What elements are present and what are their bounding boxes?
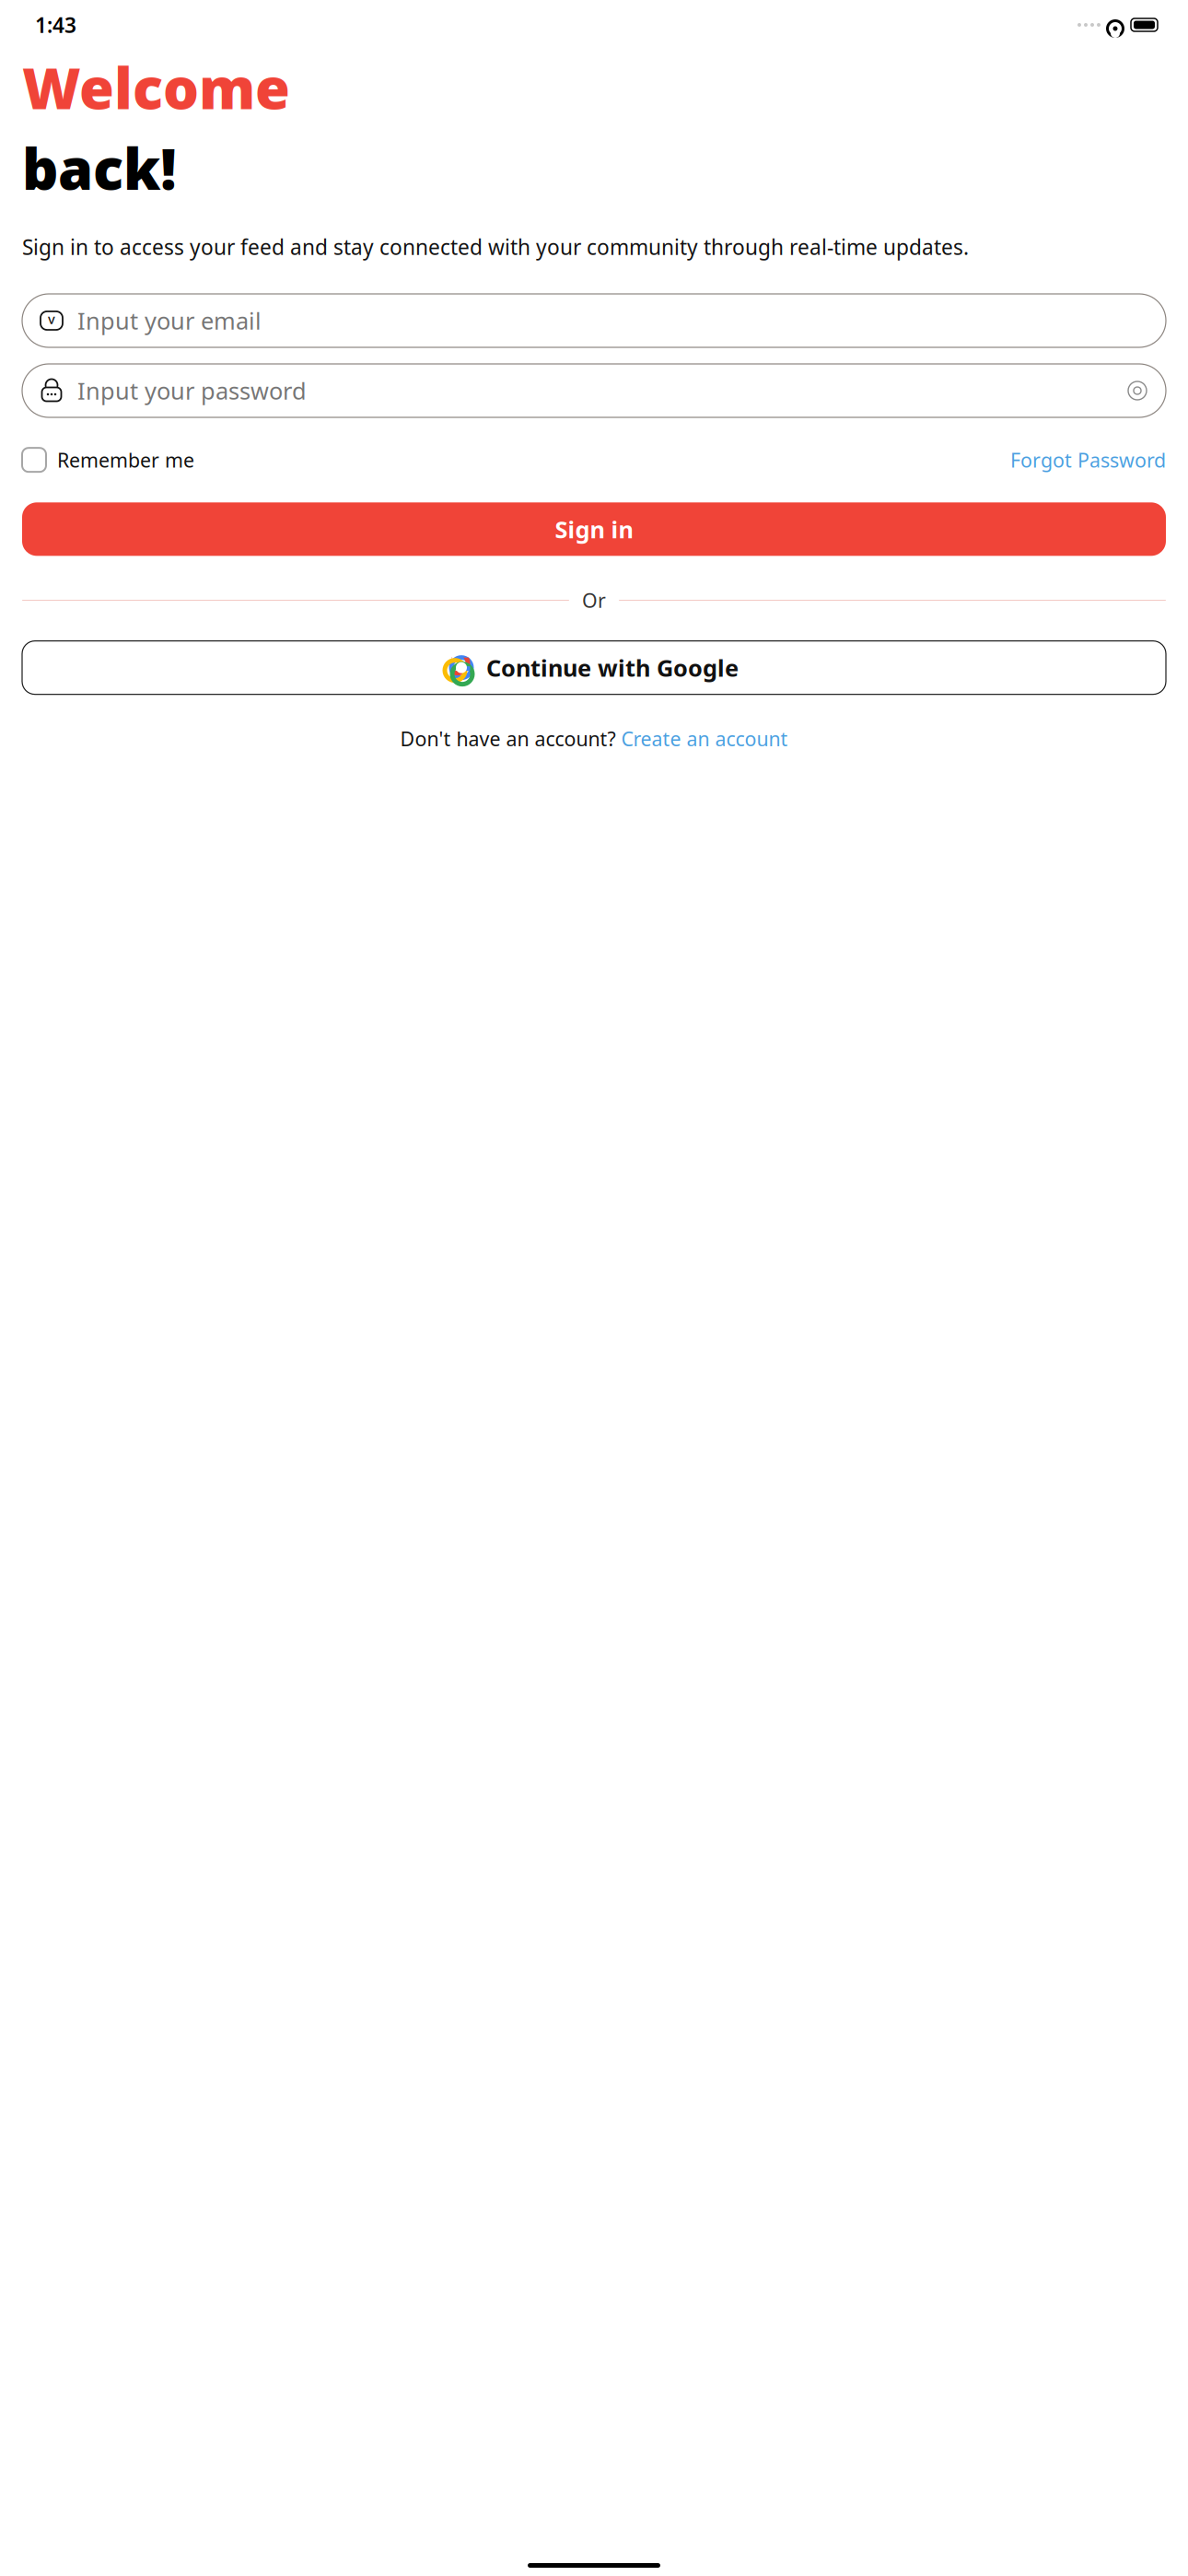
staticText: Continue with Google — [486, 652, 739, 683]
staticText: v — [48, 310, 55, 328]
button[interactable]: Create an account — [621, 726, 788, 752]
staticText: Sign in — [555, 514, 633, 545]
button[interactable]: Input your password — [22, 364, 1166, 417]
staticText: 1:43 — [35, 11, 76, 39]
staticText: Create an account — [621, 726, 788, 752]
staticText: Welcome — [22, 50, 290, 125]
button[interactable]: Continue with Google — [22, 641, 1166, 694]
button[interactable]: v — [22, 294, 1166, 347]
staticText: back! — [22, 130, 177, 205]
staticText: Or — [582, 587, 606, 613]
staticText: Don't have an account? — [400, 726, 616, 752]
staticText: Forgot Password — [1010, 447, 1166, 473]
staticText: Remember me — [57, 447, 194, 473]
staticText: Input your email — [77, 305, 262, 336]
staticText: Input your password — [77, 375, 307, 406]
staticText: Sign in to access your feed and stay con… — [22, 233, 969, 261]
button[interactable]: Remember me — [22, 441, 194, 478]
button[interactable]: Sign in — [22, 502, 1166, 556]
button[interactable]: Forgot Password — [1010, 441, 1166, 478]
